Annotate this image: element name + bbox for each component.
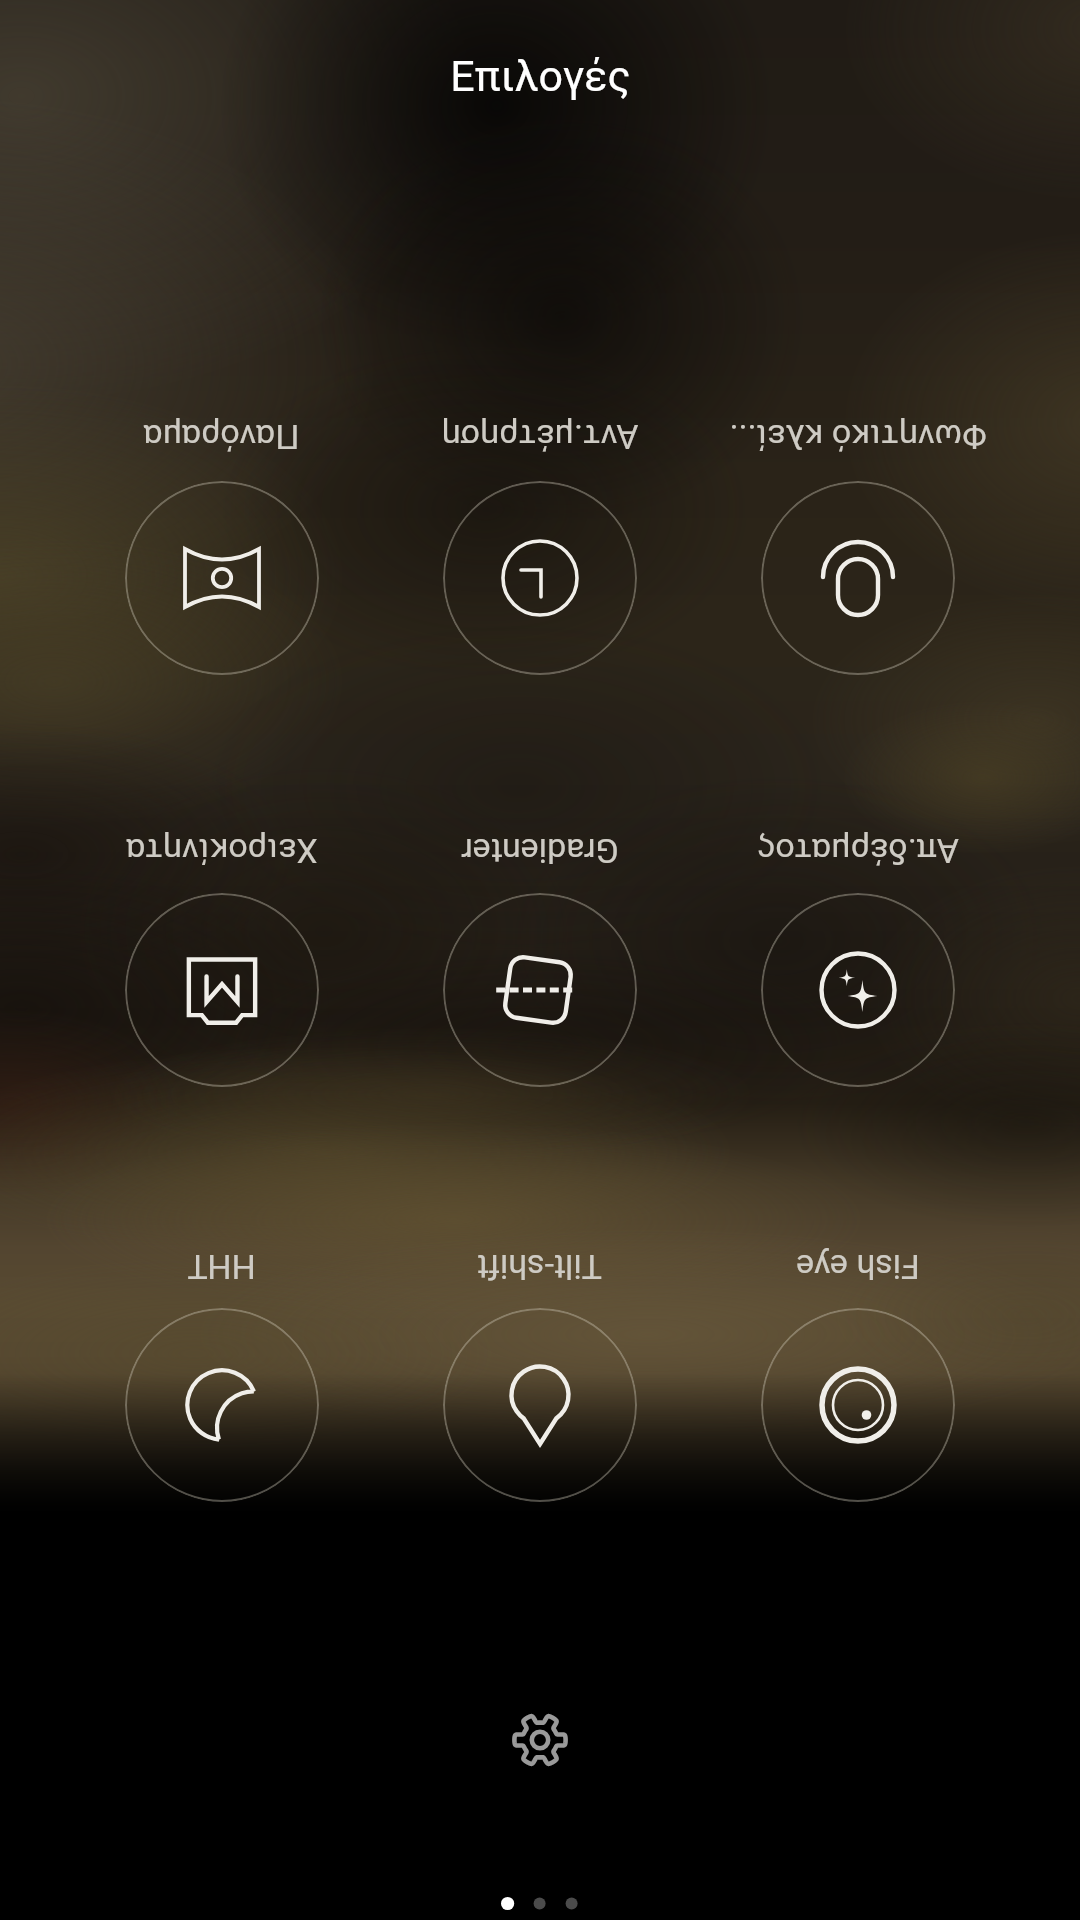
button[interactable]: Gradienter bbox=[443, 893, 637, 1087]
button[interactable]: Χειροκίνητα bbox=[125, 893, 319, 1087]
staticText: Fish eye bbox=[796, 1247, 920, 1287]
button[interactable]: Settings bbox=[512, 1712, 568, 1768]
staticText: Gradienter bbox=[461, 831, 619, 871]
button[interactable]: Fish eye bbox=[761, 1308, 955, 1502]
staticText: Αντ.μέτρηση bbox=[441, 417, 639, 457]
button[interactable]: Αντ.μέτρηση bbox=[443, 481, 637, 675]
staticText: Χειροκίνητα bbox=[126, 831, 318, 871]
button[interactable]: Απ.δέρματος bbox=[761, 893, 955, 1087]
staticText: Tilt-shift bbox=[477, 1247, 602, 1287]
staticText: Απ.δέρματος bbox=[757, 831, 959, 871]
staticText: Επιλογές bbox=[450, 51, 631, 101]
staticText: Πανόραμα bbox=[143, 417, 300, 457]
button[interactable]: Tilt-shift bbox=[443, 1308, 637, 1502]
staticText: Φωνητικό κλεί... bbox=[729, 417, 987, 457]
staticText: HHT bbox=[187, 1247, 256, 1287]
button[interactable]: Φωνητικό κλεί... bbox=[761, 481, 955, 675]
button[interactable]: HHT bbox=[125, 1308, 319, 1502]
button[interactable]: Πανόραμα bbox=[125, 481, 319, 675]
